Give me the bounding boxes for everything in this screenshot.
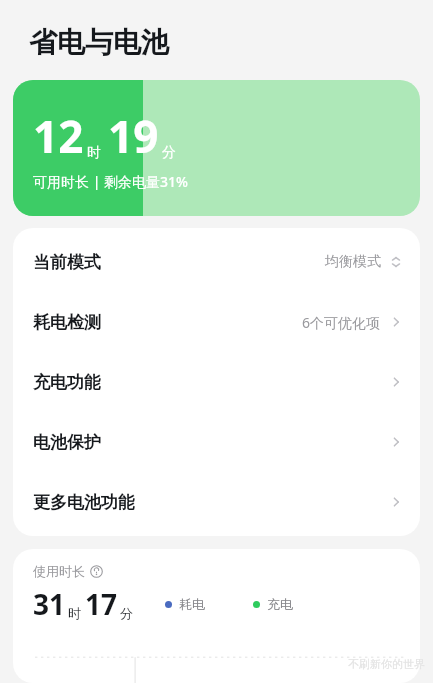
staticText: 充电功能	[33, 372, 101, 393]
staticText: 19	[108, 106, 159, 166]
button[interactable]: 充电功能	[13, 352, 420, 412]
staticText: 当前模式	[33, 252, 101, 273]
other: Open 更多电池功能	[388, 494, 404, 510]
staticText: 6个可优化项	[302, 313, 381, 332]
staticText: 31	[33, 585, 66, 623]
staticText: 可用时长 | 剩余电量31%	[33, 172, 188, 191]
staticText: 耗电检测	[33, 312, 101, 333]
button[interactable]: 耗电检测	[13, 292, 420, 352]
staticText: 分	[162, 144, 176, 162]
staticText: 使用时长	[33, 563, 85, 579]
other: Change 当前模式	[388, 254, 404, 270]
staticText: 耗电	[179, 596, 205, 612]
staticText: 分	[120, 605, 133, 621]
staticText: 17	[85, 585, 118, 623]
staticText: 不刷新你的世界	[348, 657, 425, 671]
staticText: 均衡模式	[325, 253, 381, 271]
other: Open 充电功能	[388, 374, 404, 390]
staticText: 12	[33, 106, 84, 166]
staticText: 省电与电池	[29, 25, 169, 60]
button[interactable]: 电池保护	[13, 412, 420, 472]
other: Open 耗电检测	[388, 314, 404, 330]
staticText: 时	[68, 605, 81, 621]
staticText: 更多电池功能	[33, 492, 135, 513]
button[interactable]: 当前模式	[13, 232, 420, 292]
button[interactable]: 更多电池功能	[13, 472, 420, 532]
staticText: 充电	[267, 596, 293, 612]
staticText: 时	[87, 144, 101, 162]
button[interactable]: 使用时长	[13, 549, 420, 683]
staticText: 电池保护	[33, 432, 101, 453]
button[interactable]: 12	[13, 80, 420, 216]
other: Open 电池保护	[388, 434, 404, 450]
other: Help	[90, 565, 103, 578]
